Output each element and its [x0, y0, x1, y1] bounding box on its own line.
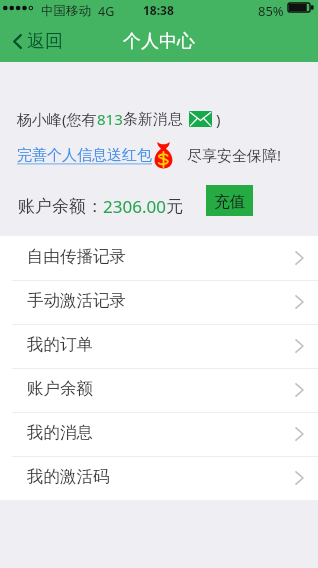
- staticText: 账户余额: [27, 378, 93, 399]
- staticText: 我的激活码: [27, 466, 110, 487]
- button[interactable]: 完善个人信息送红包: [17, 146, 152, 165]
- staticText: 我的消息: [27, 422, 93, 443]
- staticText: 我的订单: [27, 334, 93, 355]
- staticText: 尽享安全保障!: [187, 145, 282, 165]
- staticText: 2306.00: [103, 195, 166, 217]
- staticText: 杨小峰(您有: [17, 109, 97, 129]
- button[interactable]: 充值: [206, 185, 253, 216]
- staticText: 个人中心: [123, 30, 195, 53]
- button[interactable]: 手动激活记录: [0, 280, 318, 324]
- staticText: 自由传播记录: [27, 246, 126, 267]
- staticText: 4G: [98, 3, 115, 20]
- staticText: 充值: [214, 192, 245, 212]
- staticText: 返回: [27, 30, 63, 53]
- staticText: 85%: [258, 2, 284, 20]
- staticText: 元: [166, 196, 183, 217]
- button[interactable]: 自由传播记录: [0, 236, 318, 280]
- staticText: 账户余额：: [18, 196, 103, 217]
- staticText: 手动激活记录: [27, 290, 126, 311]
- staticText: ): [216, 109, 221, 129]
- button[interactable]: 返回 Back: [0, 25, 73, 58]
- staticText: 中国移动: [41, 3, 91, 19]
- button[interactable]: 我的激活码: [0, 456, 318, 500]
- staticText: 完善个人信息送红包: [17, 146, 152, 165]
- staticText: 813: [97, 109, 123, 129]
- staticText: 条新消息: [123, 110, 183, 129]
- button[interactable]: 我的消息: [0, 412, 318, 456]
- button[interactable]: 账户余额: [0, 368, 318, 412]
- button[interactable]: 我的订单: [0, 324, 318, 368]
- staticText: 18:38: [143, 2, 174, 18]
